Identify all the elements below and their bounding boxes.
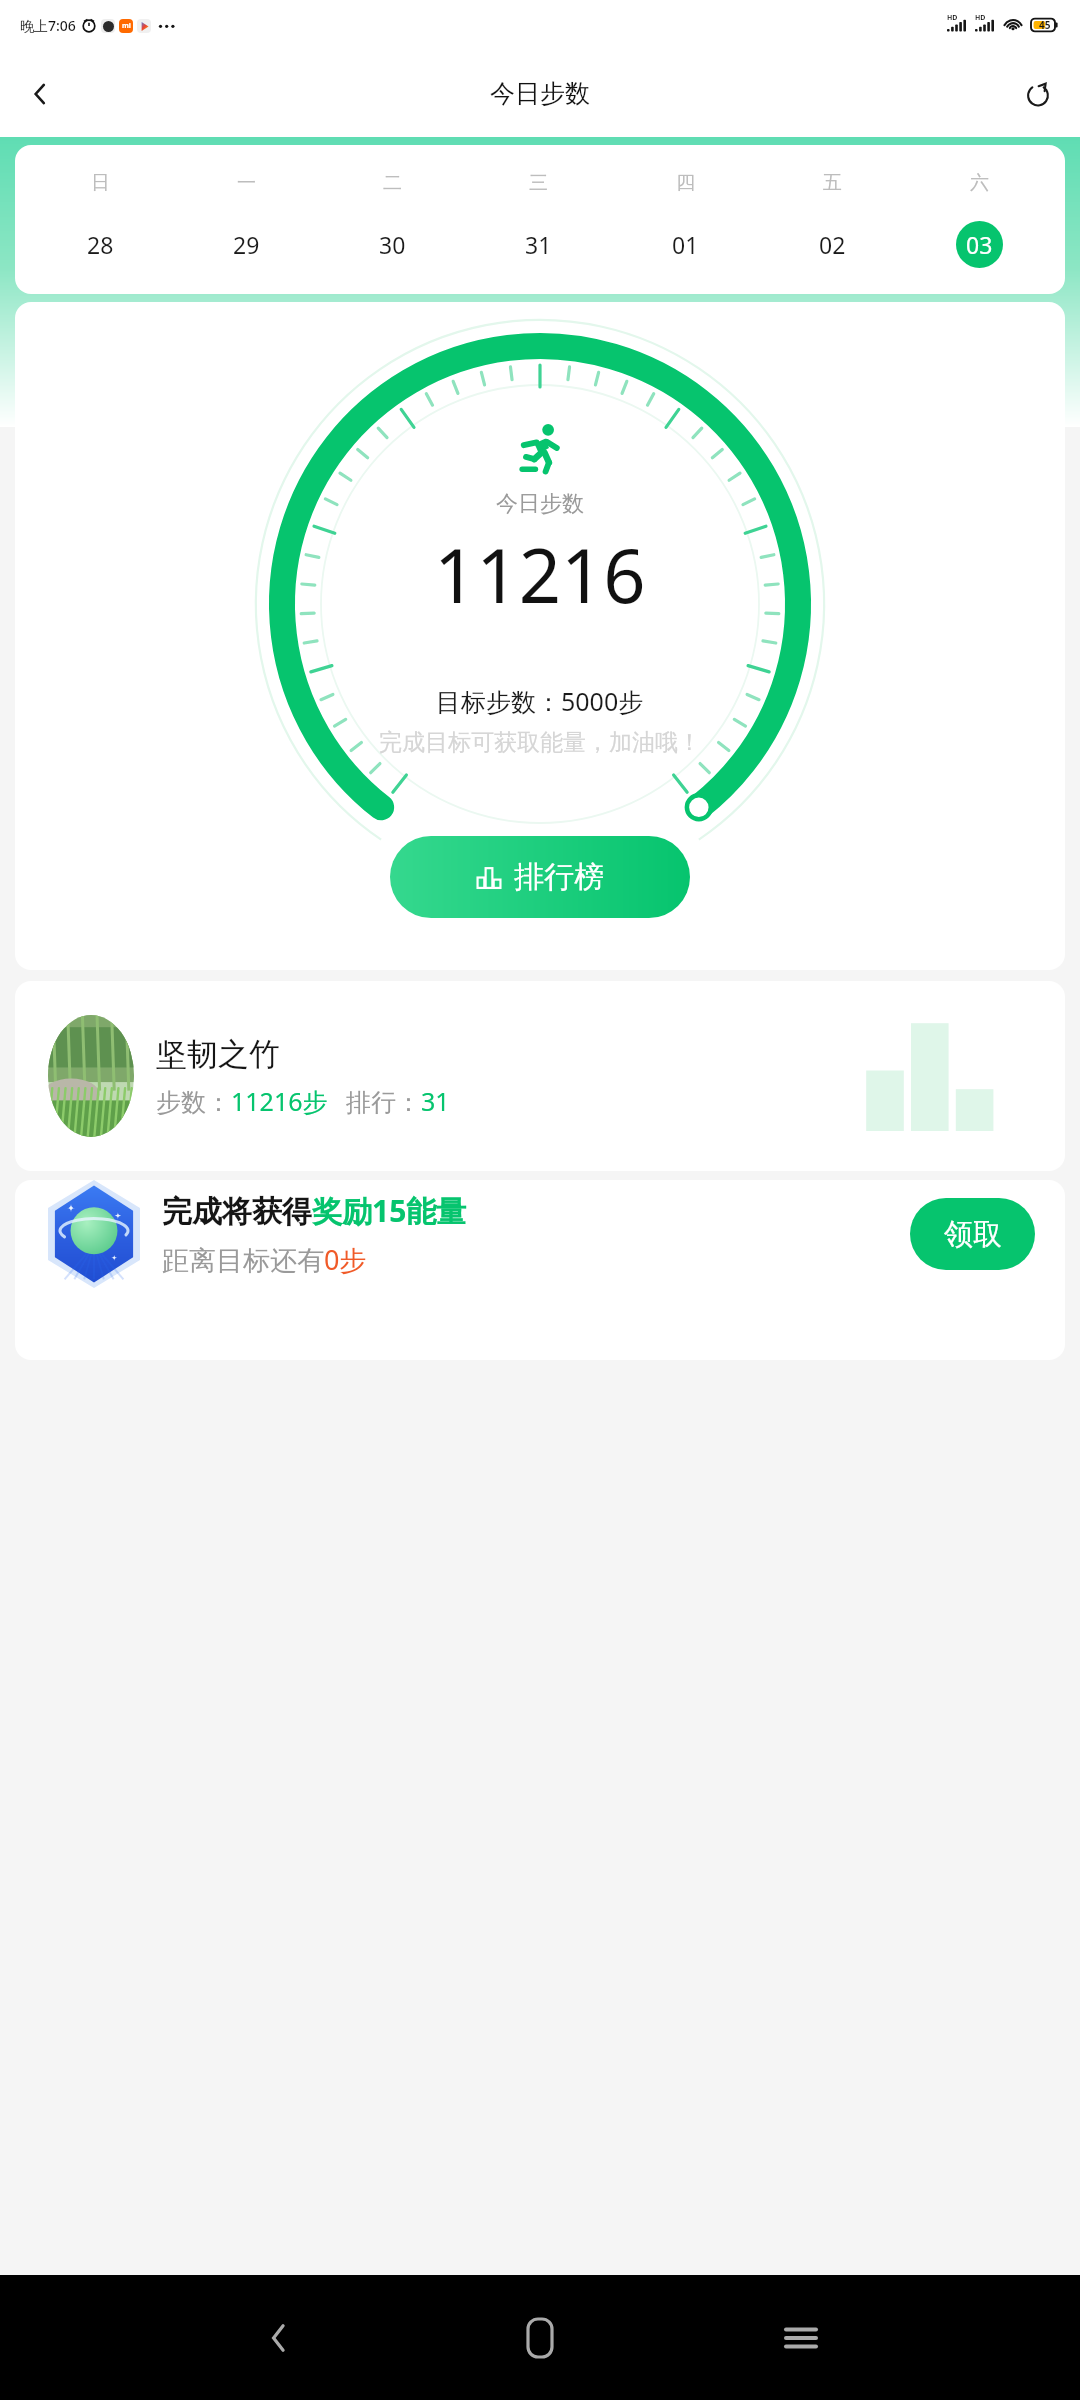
staticText: 11216 [434,524,646,625]
button[interactable]: 返回 [10,64,70,124]
button[interactable]: 日 [15,145,1065,294]
button[interactable]: 返回 [237,2296,321,2380]
staticText: 六 [970,171,989,195]
staticText: 今日步数 [496,490,584,518]
staticText: 排行榜 [514,858,604,896]
staticText: 晚上7:06 [20,16,76,35]
staticText: 11216步 [231,1084,328,1118]
staticText: 02 [819,229,846,260]
staticText: 一 [237,171,256,195]
staticText: mi [122,21,131,31]
staticText: 29 [233,229,260,260]
staticText: 四 [676,171,695,195]
staticText: HD [975,13,986,23]
staticText: 31 [525,229,552,260]
staticText: 0步 [324,1241,367,1278]
staticText: 日 [91,171,110,195]
staticText: 排行： [346,1087,421,1118]
staticText: 完成将获得 [162,1193,312,1231]
staticText: 步数： [156,1087,231,1118]
staticText: 03 [966,229,993,260]
staticText: 28 [87,229,114,260]
staticText: 完成目标可获取能量，加油哦！ [379,728,701,757]
button[interactable]: 坚韧之竹 [15,981,1065,1171]
staticText: 奖励15能量 [312,1190,467,1231]
staticText: 五 [823,171,842,195]
staticText: 二 [383,171,402,195]
staticText: HD [947,13,958,23]
staticText: 01 [672,229,699,260]
staticText: 31 [421,1084,450,1118]
button[interactable]: 领取 [910,1198,1035,1270]
staticText: 距离目标还有 [162,1244,324,1278]
staticText: 30 [379,229,406,260]
button[interactable]: 主页 [498,2296,582,2380]
button[interactable]: 最近任务 [759,2296,843,2380]
button[interactable]: 分享 [1008,64,1068,124]
staticText: 今日步数 [490,78,590,109]
staticText: 领取 [944,1216,1002,1253]
staticText: 坚韧之竹 [156,1035,280,1074]
staticText: 目标步数：5000步 [436,684,644,718]
staticText: 三 [529,171,548,195]
button[interactable]: 排行榜 [390,836,690,918]
staticText: 45 [1039,18,1051,32]
